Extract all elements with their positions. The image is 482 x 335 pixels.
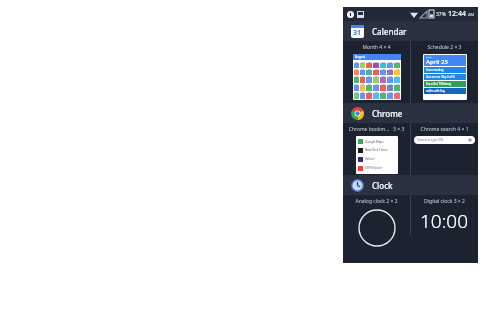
- staticText: Schedule 2 × 3: [411, 44, 478, 51]
- staticText: AM: [468, 12, 475, 17]
- button[interactable]: Chrome search 4 × 1: [411, 123, 478, 175]
- staticText: Chrome: [372, 108, 403, 119]
- button[interactable]: Chrome bookm... 3 × 3: [343, 123, 410, 175]
- button[interactable]: Analog clock 2 × 2: [343, 195, 410, 235]
- staticText: 31: [353, 28, 362, 38]
- staticText: ESPN Soccer: [365, 166, 383, 170]
- staticText: Team Out "Efficiency: [426, 82, 452, 86]
- staticText: August: [355, 55, 365, 59]
- button[interactable]: Schedule 2 × 3: [411, 41, 478, 103]
- staticText: Chrome bookm... 3 × 3: [343, 126, 410, 133]
- staticText: Yahoo!: [365, 157, 375, 161]
- staticText: Clock: [372, 180, 393, 191]
- staticText: Search or type URL: [417, 138, 444, 142]
- button[interactable]: Month 4 × 4: [343, 41, 410, 103]
- staticText: Mon: [426, 55, 432, 58]
- button[interactable]: 31: [343, 21, 478, 41]
- staticText: Chrome search 4 × 1: [411, 126, 478, 133]
- staticText: Digital clock 3 × 2: [411, 198, 478, 205]
- staticText: New York Times: [365, 148, 388, 152]
- staticText: Calendar: [372, 26, 407, 37]
- staticText: Month 4 × 4: [343, 44, 410, 51]
- button[interactable]: Digital clock 3 × 2: [411, 195, 478, 235]
- button[interactable]: Clock: [343, 175, 478, 195]
- button[interactable]: Chrome: [343, 103, 478, 123]
- staticText: April 25: [426, 58, 448, 66]
- staticText: Analog clock 2 × 2: [343, 198, 410, 205]
- staticText: Team meeting: [426, 68, 444, 72]
- staticText: 10:00: [420, 208, 469, 234]
- staticText: 12:44: [448, 9, 466, 19]
- staticText: Google Maps: [365, 140, 384, 144]
- staticText: 37%: [436, 11, 446, 18]
- staticText: One on one (Day 4 of 5): [426, 75, 455, 79]
- staticText: coffee with Guy: [426, 89, 445, 93]
